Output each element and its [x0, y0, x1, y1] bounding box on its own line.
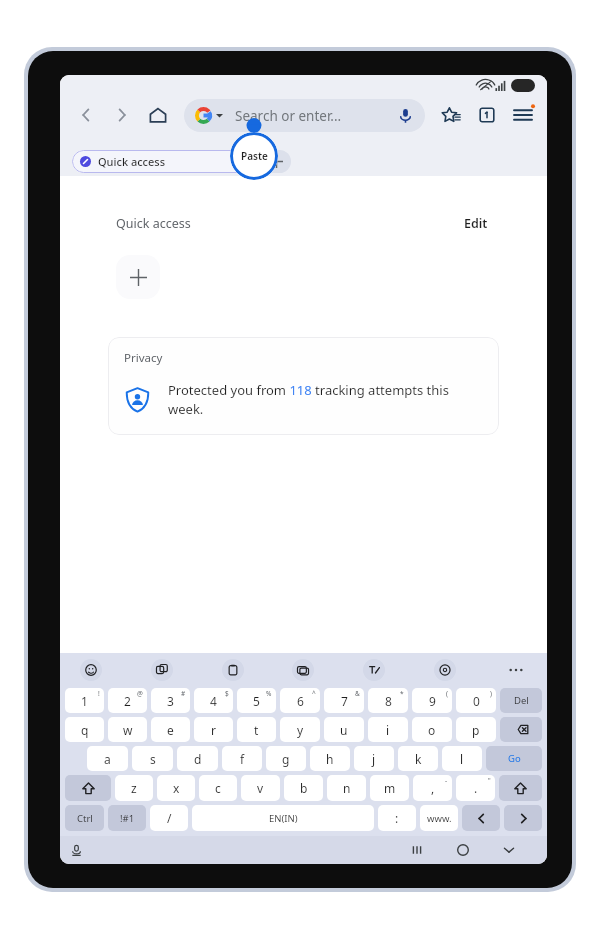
button[interactable]: l [442, 746, 482, 771]
button[interactable]: Back [72, 101, 100, 129]
button[interactable]: Shift [499, 775, 542, 801]
button[interactable]: r [194, 717, 233, 742]
button[interactable]: Backspace [500, 717, 542, 742]
staticText: ) [490, 689, 492, 698]
button[interactable]: Quick access [72, 150, 254, 173]
staticText: f [240, 751, 245, 767]
button[interactable]: w [108, 717, 147, 742]
button[interactable]: Hide keyboard [495, 836, 523, 864]
staticText: Protected you from 118 tracking attempts… [168, 381, 483, 418]
button[interactable]: Handwriting [363, 659, 385, 681]
button[interactable]: e [151, 717, 190, 742]
button[interactable]: . [456, 775, 495, 801]
staticText: . [474, 780, 478, 796]
button[interactable]: Recents [403, 836, 431, 864]
button[interactable]: p [456, 717, 496, 742]
button[interactable]: !#1 [108, 805, 146, 831]
button[interactable]: Go [486, 746, 542, 771]
button[interactable]: Previous [462, 805, 500, 831]
button[interactable]: Search or enter... [184, 99, 425, 132]
button[interactable]: Translate [151, 659, 173, 681]
button[interactable]: o [412, 717, 452, 742]
staticText: EN(IN) [269, 812, 298, 825]
staticText: www. [427, 812, 452, 825]
staticText: $ [225, 689, 229, 698]
staticText: 0 [473, 693, 480, 709]
button[interactable]: 3 [151, 688, 190, 713]
staticText: k [415, 751, 422, 767]
button[interactable]: a [87, 746, 128, 771]
button[interactable]: Bookmarks [437, 101, 465, 129]
staticText: n [343, 780, 351, 796]
other: Voice search [397, 107, 414, 124]
button[interactable]: 4 [194, 688, 233, 713]
button[interactable]: z [115, 775, 153, 801]
button[interactable]: x [157, 775, 195, 801]
button[interactable]: 8 [368, 688, 408, 713]
button[interactable]: / [150, 805, 188, 831]
staticText: - [445, 776, 448, 785]
staticText: c [215, 780, 221, 796]
button[interactable]: t [237, 717, 276, 742]
button[interactable]: Add shortcut [116, 255, 160, 299]
button[interactable]: c [199, 775, 237, 801]
staticText: Paste [241, 149, 268, 163]
button[interactable]: Privacy [108, 337, 499, 435]
staticText: a [104, 751, 111, 767]
button[interactable]: n [327, 775, 366, 801]
button[interactable]: Keyboard [292, 659, 314, 681]
button[interactable]: Menu [509, 101, 537, 129]
staticText: s [150, 751, 156, 767]
button[interactable]: Home [449, 836, 477, 864]
button[interactable]: 6 [280, 688, 320, 713]
button[interactable]: Edit [461, 212, 491, 235]
staticText: Privacy [124, 350, 163, 366]
button[interactable]: f [222, 746, 262, 771]
button[interactable]: New tab [261, 150, 291, 173]
button[interactable]: i [368, 717, 408, 742]
staticText: 9 [429, 693, 436, 709]
button[interactable]: www. [420, 805, 458, 831]
button[interactable]: 5 [237, 688, 276, 713]
button[interactable]: Shift [65, 775, 111, 801]
button[interactable]: 1 [65, 688, 104, 713]
button[interactable]: s [132, 746, 173, 771]
button[interactable]: EN(IN) [192, 805, 374, 831]
button[interactable]: Ctrl [65, 805, 104, 831]
button[interactable]: 0 [456, 688, 496, 713]
button[interactable]: Emoji [80, 659, 102, 681]
button[interactable]: v [241, 775, 280, 801]
button[interactable]: More [505, 659, 527, 681]
button[interactable]: u [324, 717, 364, 742]
button[interactable]: Voice input [70, 844, 83, 857]
button[interactable]: 2 [108, 688, 147, 713]
button[interactable]: 9 [412, 688, 452, 713]
button[interactable]: g [266, 746, 306, 771]
staticText: l [460, 751, 464, 767]
button[interactable]: Settings [434, 659, 456, 681]
button[interactable]: q [65, 717, 104, 742]
button[interactable]: Del [500, 688, 542, 713]
button[interactable]: , [413, 775, 452, 801]
staticText: z [131, 780, 137, 796]
button[interactable]: Forward [108, 101, 136, 129]
button[interactable]: y [280, 717, 320, 742]
button[interactable]: : [378, 805, 416, 831]
button[interactable]: b [284, 775, 323, 801]
button[interactable]: Tabs [473, 101, 501, 129]
button[interactable]: 7 [324, 688, 364, 713]
button[interactable]: d [177, 746, 218, 771]
staticText: # [181, 689, 186, 698]
button[interactable]: j [354, 746, 394, 771]
button[interactable]: k [398, 746, 438, 771]
staticText: !#1 [120, 812, 135, 825]
button[interactable]: Paste [230, 132, 278, 180]
staticText: Ctrl [77, 812, 93, 825]
staticText: Del [514, 694, 529, 707]
button[interactable]: Next [504, 805, 542, 831]
button[interactable]: Clipboard [222, 659, 244, 681]
button[interactable]: h [310, 746, 350, 771]
staticText: 1 [81, 693, 88, 709]
button[interactable]: Home [144, 101, 172, 129]
button[interactable]: m [370, 775, 409, 801]
